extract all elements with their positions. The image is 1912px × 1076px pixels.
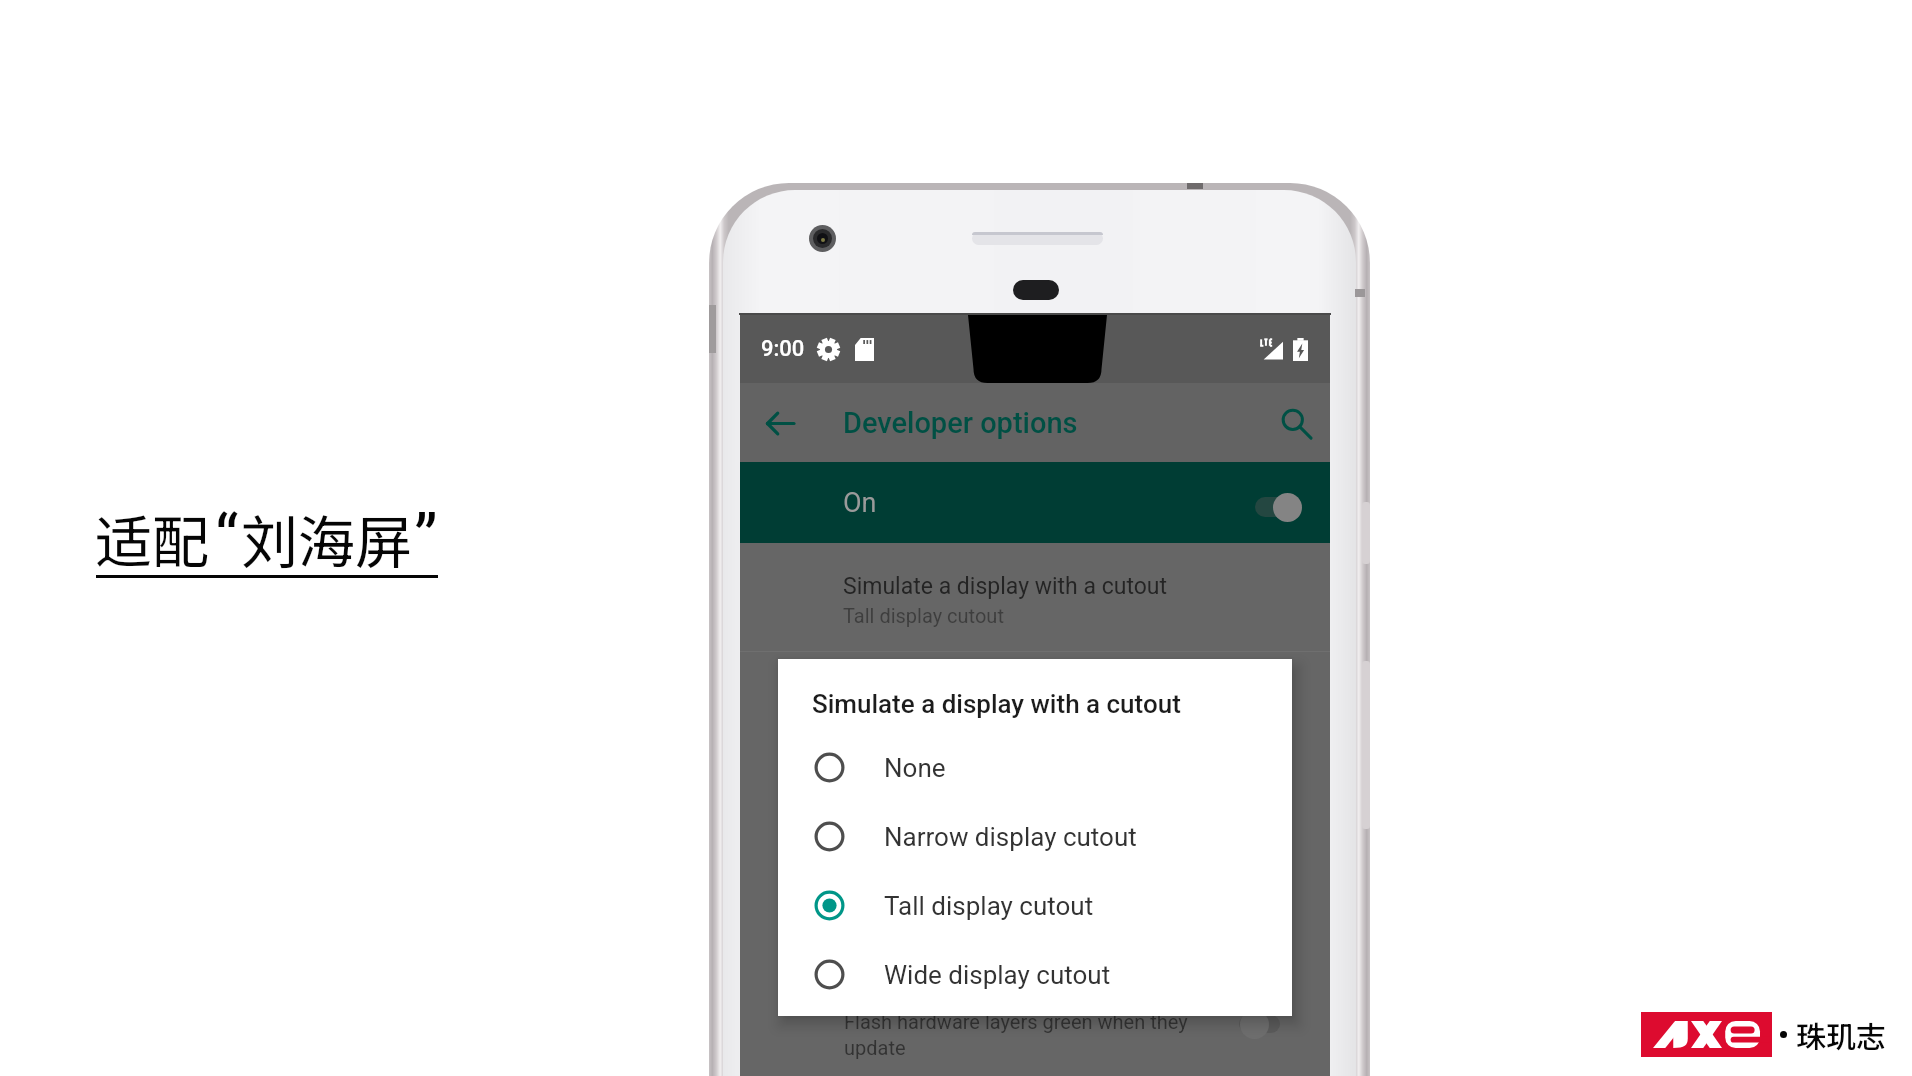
button[interactable]: Wide display cutout bbox=[778, 940, 1292, 1009]
button[interactable]: Developer options on bbox=[1254, 490, 1302, 524]
staticText: Flash hardware layers green when they bbox=[844, 1010, 1188, 1033]
staticText: ” bbox=[414, 501, 438, 578]
button[interactable]: On bbox=[740, 462, 1330, 543]
button[interactable]: Tall display cutout bbox=[778, 871, 1292, 940]
staticText: Narrow display cutout bbox=[884, 822, 1137, 852]
button[interactable]: Flash hardware layers green when they bbox=[740, 1005, 1330, 1076]
button[interactable]: None bbox=[778, 733, 1292, 802]
staticText: update bbox=[844, 1036, 906, 1059]
staticText: Simulate a display with a cutout bbox=[843, 573, 1168, 600]
staticText: Developer options bbox=[843, 406, 1078, 440]
staticText: Wide display cutout bbox=[884, 960, 1111, 990]
staticText: 珠玑志 bbox=[1796, 1013, 1886, 1056]
staticText: 适配 bbox=[95, 497, 209, 580]
staticText: Tall display cutout bbox=[843, 604, 1004, 627]
button[interactable]: Narrow display cutout bbox=[778, 802, 1292, 871]
button[interactable]: Search bbox=[1269, 396, 1323, 450]
button[interactable]: Simulate a display with a cutout bbox=[740, 543, 1330, 652]
button[interactable]: Flash hardware layers toggle bbox=[1238, 1009, 1288, 1039]
staticText: “ bbox=[215, 501, 239, 578]
staticText: None bbox=[884, 753, 946, 783]
staticText: 9:00 bbox=[761, 336, 805, 362]
staticText: Simulate a display with a cutout bbox=[812, 689, 1181, 719]
staticText: 刘海屏 bbox=[241, 497, 412, 580]
staticText: Tall display cutout bbox=[884, 891, 1094, 921]
button[interactable]: Back bbox=[753, 396, 807, 450]
staticText: On bbox=[843, 487, 877, 519]
